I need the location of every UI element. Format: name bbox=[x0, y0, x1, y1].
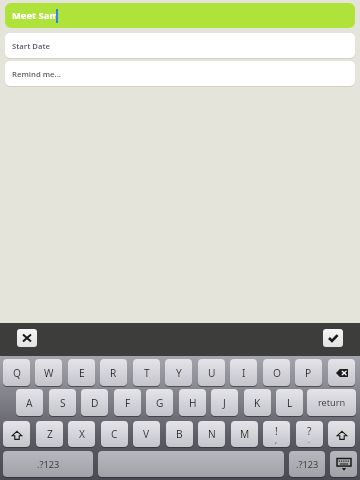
staticText: ! bbox=[275, 424, 278, 438]
button[interactable]: A bbox=[16, 389, 43, 416]
staticText: D bbox=[91, 396, 99, 410]
staticText: X bbox=[79, 427, 85, 441]
staticText: R bbox=[110, 366, 117, 380]
button[interactable]: I bbox=[230, 359, 257, 386]
staticText: H bbox=[189, 396, 197, 410]
staticText: I bbox=[242, 366, 246, 380]
button[interactable]: T bbox=[133, 359, 160, 386]
button[interactable]: E bbox=[68, 359, 95, 386]
staticText: Y bbox=[176, 366, 182, 380]
button[interactable]: SHIFT bbox=[328, 421, 355, 447]
staticText: W bbox=[44, 366, 54, 380]
staticText: .?123 bbox=[37, 458, 60, 471]
button[interactable]: F bbox=[114, 389, 141, 416]
staticText: , bbox=[275, 435, 278, 445]
button[interactable]: G bbox=[146, 389, 173, 416]
staticText: V bbox=[143, 427, 150, 441]
staticText: L bbox=[287, 396, 293, 410]
button[interactable]: B bbox=[166, 421, 193, 447]
button[interactable]: Meet Sam bbox=[5, 3, 355, 28]
button[interactable]: BKSP bbox=[328, 359, 355, 386]
staticText: Meet Sam bbox=[12, 9, 59, 22]
button[interactable]: C bbox=[101, 421, 128, 447]
button[interactable]: Remind me... bbox=[5, 61, 355, 86]
button[interactable]: Done bbox=[323, 329, 343, 347]
staticText: U bbox=[208, 366, 216, 380]
button[interactable]: D bbox=[81, 389, 108, 416]
button[interactable]: O bbox=[263, 359, 290, 386]
button[interactable]: X bbox=[68, 421, 95, 447]
button[interactable]: Q bbox=[3, 359, 30, 386]
staticText: P bbox=[305, 366, 312, 380]
staticText: return bbox=[318, 396, 346, 409]
button[interactable]: .?123 bbox=[3, 451, 93, 477]
button[interactable]: N bbox=[198, 421, 225, 447]
staticText: M bbox=[240, 427, 250, 441]
button[interactable]: M bbox=[231, 421, 258, 447]
staticText: Start Date bbox=[12, 41, 51, 51]
staticText: N bbox=[208, 427, 216, 441]
staticText: A bbox=[26, 396, 33, 410]
button[interactable]: .?123 bbox=[289, 451, 325, 477]
button[interactable]: ? bbox=[296, 421, 323, 447]
staticText: Z bbox=[47, 427, 53, 441]
staticText: B bbox=[176, 427, 183, 441]
button[interactable]: Start Date bbox=[5, 33, 355, 58]
button[interactable]: R bbox=[100, 359, 127, 386]
staticText: G bbox=[156, 396, 164, 410]
staticText: . bbox=[308, 435, 311, 445]
button[interactable]: Y bbox=[165, 359, 192, 386]
staticText: C bbox=[111, 427, 118, 441]
staticText: .?123 bbox=[296, 458, 319, 471]
staticText: E bbox=[79, 366, 85, 380]
button[interactable]: SHIFT bbox=[3, 421, 30, 447]
button[interactable]: U bbox=[198, 359, 225, 386]
staticText: O bbox=[273, 366, 281, 380]
button[interactable]: W bbox=[35, 359, 62, 386]
button[interactable]: H bbox=[179, 389, 206, 416]
button[interactable]: P bbox=[295, 359, 322, 386]
staticText: Q bbox=[13, 366, 21, 380]
button[interactable]: ! bbox=[263, 421, 290, 447]
staticText: K bbox=[254, 396, 261, 410]
button[interactable]: L bbox=[276, 389, 303, 416]
button[interactable]: J bbox=[211, 389, 238, 416]
button[interactable]: return bbox=[307, 389, 356, 416]
button[interactable]: Cancel bbox=[17, 329, 37, 347]
button[interactable]: Z bbox=[36, 421, 63, 447]
staticText: ? bbox=[307, 424, 312, 438]
button[interactable]: space bbox=[98, 451, 284, 477]
button[interactable]: K bbox=[244, 389, 271, 416]
staticText: J bbox=[223, 396, 226, 410]
button[interactable]: S bbox=[49, 389, 76, 416]
button[interactable]: KB bbox=[330, 451, 357, 477]
staticText: F bbox=[125, 396, 131, 410]
button[interactable]: V bbox=[133, 421, 160, 447]
staticText: T bbox=[144, 366, 150, 380]
staticText: S bbox=[60, 396, 66, 410]
staticText: Remind me... bbox=[12, 69, 61, 79]
